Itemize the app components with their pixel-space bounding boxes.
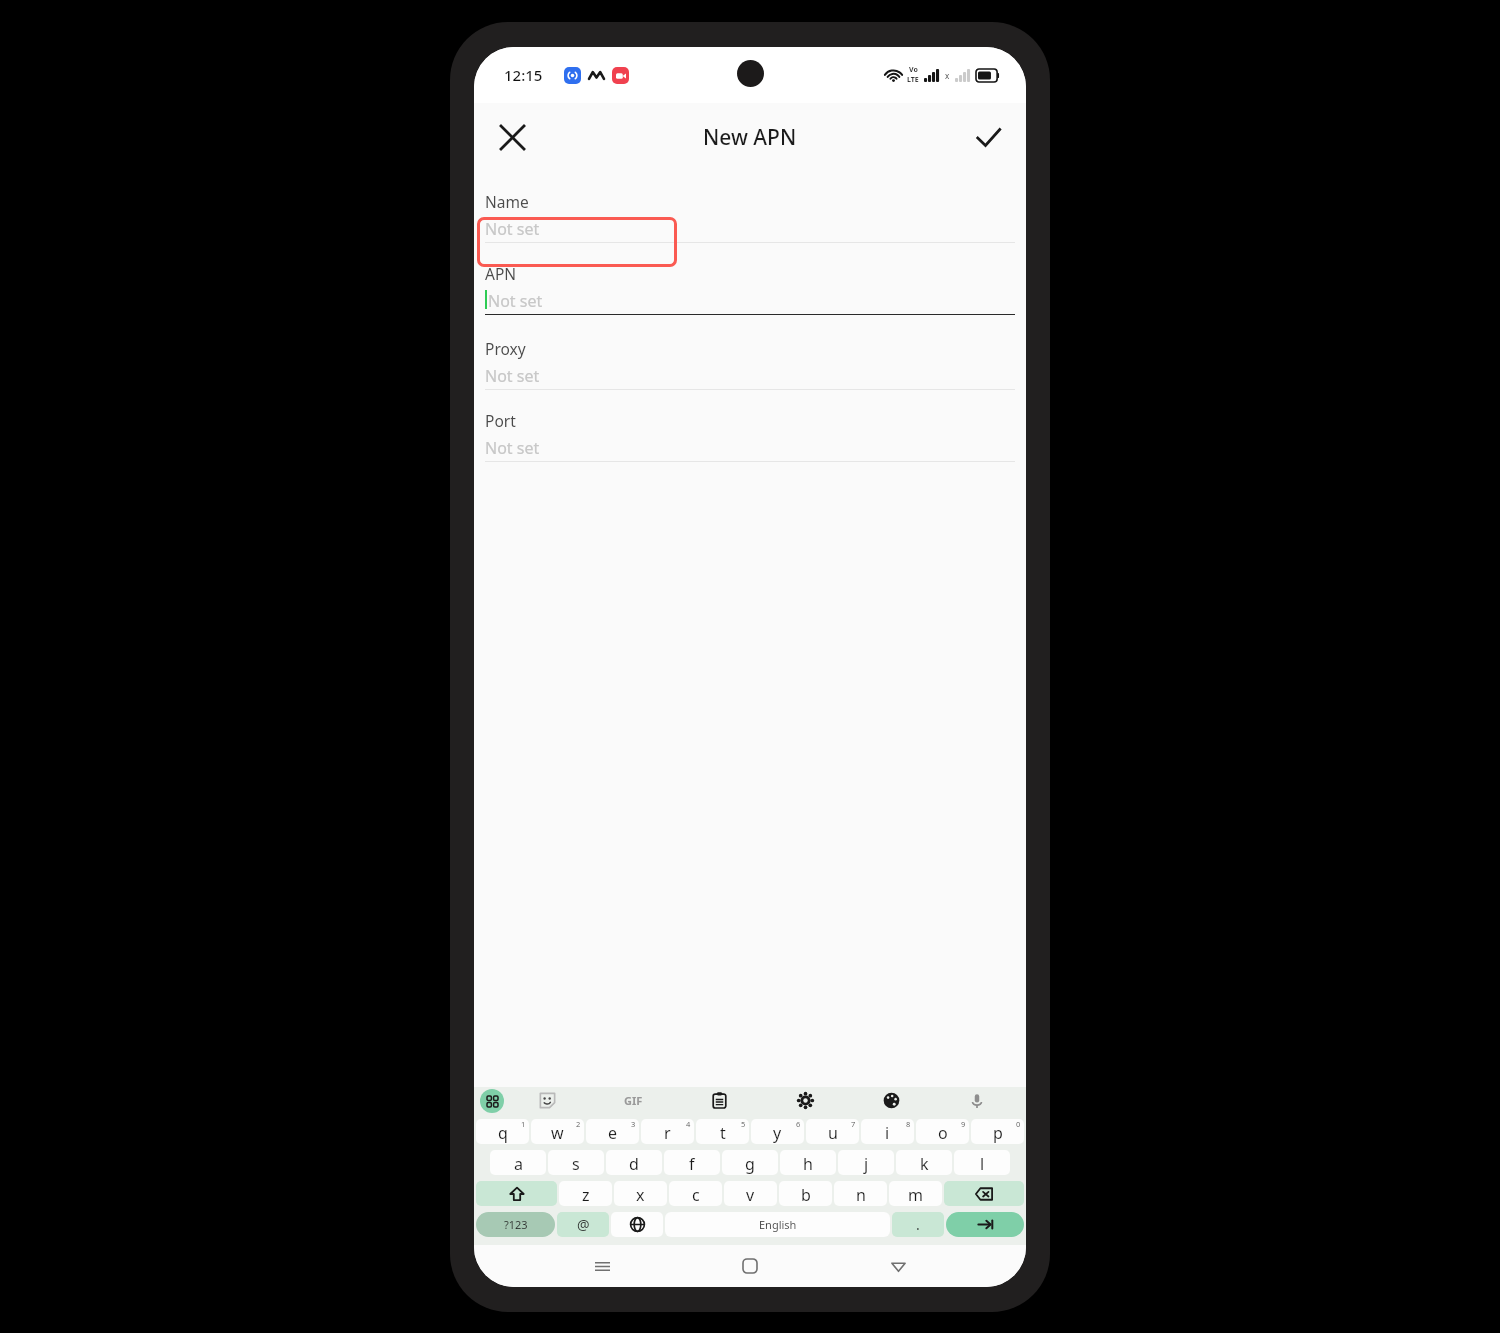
button[interactable]: a bbox=[490, 1150, 546, 1175]
button[interactable]: n bbox=[834, 1181, 887, 1206]
button[interactable]: Keyboard modes bbox=[480, 1089, 504, 1113]
button[interactable]: Stickers bbox=[504, 1087, 590, 1114]
staticText: @ bbox=[577, 1215, 590, 1234]
button[interactable]: Name bbox=[474, 181, 1026, 253]
staticText: English bbox=[759, 1217, 797, 1232]
staticText: b bbox=[801, 1184, 811, 1206]
button[interactable]: i bbox=[861, 1119, 914, 1144]
staticText: 4 bbox=[686, 1119, 691, 1129]
button[interactable]: b bbox=[779, 1181, 832, 1206]
staticText: m bbox=[908, 1184, 923, 1206]
button[interactable]: e bbox=[586, 1119, 639, 1144]
button[interactable]: o bbox=[916, 1119, 969, 1144]
staticText: 7 bbox=[851, 1119, 856, 1129]
staticText: e bbox=[608, 1122, 618, 1144]
staticText: x bbox=[945, 70, 950, 81]
staticText: x bbox=[636, 1184, 645, 1206]
staticText: p bbox=[993, 1122, 1003, 1144]
staticText: q bbox=[498, 1122, 508, 1144]
button[interactable]: Save bbox=[964, 113, 1012, 161]
staticText: z bbox=[582, 1184, 590, 1206]
button[interactable]: w bbox=[531, 1119, 584, 1144]
staticText: Not set bbox=[485, 437, 540, 458]
button[interactable]: x bbox=[614, 1181, 667, 1206]
staticText: h bbox=[803, 1153, 813, 1175]
staticText: i bbox=[885, 1122, 890, 1144]
button[interactable]: Backspace bbox=[944, 1181, 1024, 1206]
staticText: New APN bbox=[703, 123, 797, 152]
staticText: n bbox=[856, 1184, 866, 1206]
button[interactable]: English bbox=[665, 1212, 890, 1237]
staticText: l bbox=[980, 1153, 985, 1175]
staticText: 0 bbox=[1016, 1119, 1021, 1129]
staticText: Proxy bbox=[485, 338, 526, 359]
button[interactable]: Next field bbox=[946, 1212, 1024, 1237]
staticText: Not set bbox=[488, 290, 543, 311]
staticText: d bbox=[629, 1153, 639, 1175]
button[interactable]: h bbox=[780, 1150, 836, 1175]
staticText: LTE bbox=[907, 75, 919, 85]
button[interactable]: g bbox=[722, 1150, 778, 1175]
button[interactable]: GIF bbox=[590, 1087, 676, 1114]
staticText: 2 bbox=[576, 1119, 581, 1129]
button[interactable]: l bbox=[954, 1150, 1010, 1175]
button[interactable]: Close bbox=[488, 113, 536, 161]
button[interactable]: . bbox=[892, 1212, 944, 1237]
button[interactable]: c bbox=[669, 1181, 722, 1206]
staticText: 3 bbox=[631, 1119, 636, 1129]
staticText: v bbox=[746, 1184, 755, 1206]
button[interactable]: v bbox=[724, 1181, 777, 1206]
staticText: 1 bbox=[521, 1119, 526, 1129]
staticText: Not set bbox=[485, 365, 540, 386]
button[interactable]: Change language bbox=[611, 1212, 663, 1237]
staticText: r bbox=[664, 1122, 671, 1144]
staticText: APN bbox=[485, 263, 517, 284]
staticText: 5 bbox=[741, 1119, 746, 1129]
staticText: 8 bbox=[906, 1119, 911, 1129]
button[interactable]: z bbox=[559, 1181, 612, 1206]
button[interactable]: Proxy bbox=[474, 328, 1026, 400]
staticText: j bbox=[864, 1153, 869, 1175]
staticText: Vo bbox=[909, 65, 918, 75]
button[interactable]: Recents bbox=[582, 1246, 622, 1286]
staticText: . bbox=[916, 1215, 920, 1234]
staticText: k bbox=[920, 1153, 929, 1175]
button[interactable]: Home bbox=[730, 1246, 770, 1286]
button[interactable]: j bbox=[838, 1150, 894, 1175]
button[interactable]: f bbox=[664, 1150, 720, 1175]
staticText: w bbox=[551, 1122, 564, 1144]
button[interactable]: r bbox=[641, 1119, 694, 1144]
button[interactable]: m bbox=[889, 1181, 942, 1206]
button[interactable]: s bbox=[548, 1150, 604, 1175]
button[interactable]: Voice input bbox=[934, 1087, 1020, 1114]
staticText: 6 bbox=[796, 1119, 801, 1129]
button[interactable]: Settings bbox=[762, 1087, 848, 1114]
button[interactable]: Shift bbox=[476, 1181, 557, 1206]
button[interactable]: Port bbox=[474, 400, 1026, 471]
button[interactable]: q bbox=[476, 1119, 529, 1144]
button[interactable]: Back bbox=[878, 1246, 918, 1286]
button[interactable]: y bbox=[751, 1119, 804, 1144]
staticText: f bbox=[689, 1153, 695, 1175]
button[interactable]: u bbox=[806, 1119, 859, 1144]
button[interactable]: d bbox=[606, 1150, 662, 1175]
staticText: t bbox=[720, 1122, 726, 1144]
staticText: y bbox=[773, 1122, 782, 1144]
button[interactable]: ?123 bbox=[476, 1212, 555, 1237]
staticText: 12:15 bbox=[504, 65, 543, 85]
button[interactable]: Clipboard bbox=[676, 1087, 762, 1114]
button[interactable]: Themes bbox=[848, 1087, 934, 1114]
button[interactable]: @ bbox=[557, 1212, 609, 1237]
staticText: Not set bbox=[485, 218, 540, 239]
staticText: Port bbox=[485, 410, 516, 431]
staticText: c bbox=[692, 1184, 700, 1206]
staticText: a bbox=[514, 1153, 523, 1175]
button[interactable]: p bbox=[971, 1119, 1024, 1144]
staticText: u bbox=[828, 1122, 838, 1144]
staticText: Name bbox=[485, 191, 529, 212]
staticText: o bbox=[938, 1122, 948, 1144]
button[interactable]: t bbox=[696, 1119, 749, 1144]
button[interactable]: k bbox=[896, 1150, 952, 1175]
staticText: g bbox=[745, 1153, 755, 1175]
button[interactable]: APN bbox=[474, 253, 1026, 328]
